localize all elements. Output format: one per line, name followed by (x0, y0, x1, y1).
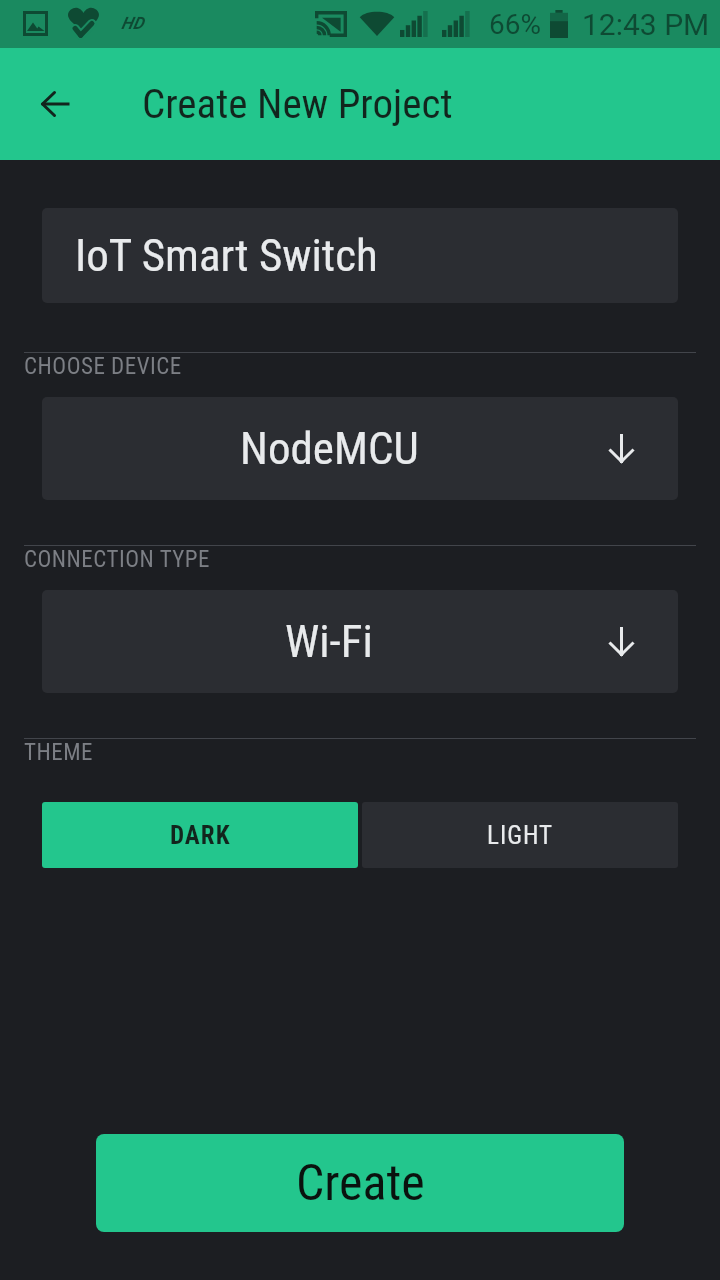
button[interactable]: Back (23, 71, 89, 137)
button[interactable]: NodeMCU (42, 397, 678, 500)
button[interactable]: Wi-Fi (42, 590, 678, 693)
staticText: 66% (489, 8, 541, 41)
staticText: THEME (24, 739, 93, 766)
staticText: LIGHT (487, 821, 554, 850)
staticText: NodeMCU (240, 422, 419, 475)
staticText: HD (121, 13, 144, 33)
staticText: CONNECTION TYPE (24, 546, 211, 573)
staticText: Create New Project (142, 80, 453, 128)
button[interactable]: DARK (42, 802, 358, 868)
staticText: Wi-Fi (285, 615, 373, 668)
button[interactable]: Create (96, 1134, 624, 1232)
button[interactable]: LIGHT (362, 802, 678, 868)
button[interactable]: IoT Smart Switch (42, 208, 678, 303)
staticText: DARK (170, 821, 231, 850)
staticText: CHOOSE DEVICE (24, 353, 182, 380)
staticText: 12:43 PM (582, 7, 710, 42)
staticText: IoT Smart Switch (75, 229, 378, 282)
staticText: Create (296, 1154, 425, 1213)
